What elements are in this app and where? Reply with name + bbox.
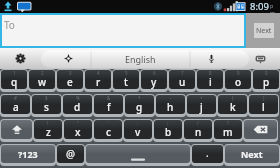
button[interactable]: 3 [57,70,83,89]
button[interactable]: % [63,95,92,114]
staticText: ( [232,95,234,101]
button[interactable]: + [187,95,216,114]
staticText: 2 [41,70,44,76]
button[interactable]: ? [214,120,242,139]
staticText: 8 [209,70,212,76]
staticText: b [165,125,172,139]
staticText: f [107,100,111,114]
staticText: pm [270,2,276,15]
button[interactable]: * [125,95,154,114]
staticText: + [200,95,203,101]
staticText: @ [66,147,75,161]
button[interactable]: / [184,120,212,139]
button[interactable]: ! [34,120,62,139]
button[interactable]: ?123 [1,145,55,163]
staticText: - [170,95,172,101]
staticText: ; [167,120,169,126]
button[interactable] [86,145,190,163]
staticText: o [235,75,242,89]
staticText: l [262,100,265,114]
button[interactable]: & [94,95,123,114]
staticText: ' [107,120,109,126]
staticText: 0 [265,70,268,76]
staticText: k [230,100,236,114]
staticText: To [4,18,15,32]
staticText: 3 [69,70,72,76]
staticText: 6 [153,70,156,76]
staticText: t [124,75,128,89]
staticText: q [11,75,18,89]
button[interactable]: Voice input [194,48,229,69]
staticText: n [195,125,202,139]
button[interactable]: Settings [9,48,31,69]
staticText: 1 [13,70,16,76]
staticText: ? [227,120,229,126]
button[interactable]: 2 [29,70,55,89]
button[interactable]: ) [249,95,278,114]
staticText: r [96,75,101,89]
staticText: # [14,95,17,101]
staticText: / [197,120,199,126]
button[interactable]: ; [154,120,182,139]
staticText: u [179,75,186,89]
staticText: Next [241,148,263,160]
staticText: d [74,100,81,114]
button[interactable]: 0 [253,70,279,89]
staticText: 7 [181,70,184,76]
staticText: z [46,125,51,139]
staticText: c [106,125,111,139]
staticText: j [200,100,203,114]
button[interactable]: English [95,48,186,69]
button[interactable]: . [192,145,223,163]
staticText: x [75,125,81,139]
staticText: p [263,75,270,89]
button[interactable]: To [2,15,244,46]
staticText: m [223,125,233,139]
button[interactable]: Hide keyboard [249,48,271,69]
button[interactable]: 9 [225,70,251,89]
button[interactable]: @ [57,145,84,163]
button[interactable]: Next [254,23,274,38]
button[interactable]: # [1,95,30,114]
staticText: 5 [125,70,128,76]
staticText: . [206,146,209,160]
button[interactable]: - [156,95,185,114]
staticText: % [76,95,80,101]
staticText: w [38,75,47,89]
button[interactable]: ' [94,120,122,139]
staticText: i [209,75,212,89]
button[interactable]: : [124,120,152,139]
button[interactable]: 8 [197,70,223,89]
staticText: g [136,100,143,114]
staticText: y [151,75,157,89]
staticText: : [137,120,139,126]
staticText: 4 [97,70,100,76]
button[interactable]: ( [218,95,247,114]
staticText: s [44,100,49,114]
button[interactable]: 5 [113,70,139,89]
button[interactable]: 1 [1,70,27,89]
staticText: * [138,95,141,101]
staticText: h [167,100,174,114]
button[interactable]: 6 [141,70,167,89]
button[interactable]: 4 [85,70,111,89]
staticText: English [125,53,156,65]
staticText: 9 [237,70,240,76]
button[interactable]: 7 [169,70,195,89]
button[interactable] [244,120,277,139]
button[interactable]: Suggestions [50,48,86,69]
staticText: Next [256,26,272,36]
staticText: ?123 [18,148,38,160]
staticText: $ [45,95,48,101]
staticText: v [135,125,141,139]
staticText: 8:09 [250,0,269,13]
staticText: e [67,75,73,89]
staticText: " [77,120,79,126]
button[interactable]: $ [32,95,61,114]
staticText: ) [263,95,265,101]
button[interactable]: " [64,120,92,139]
staticText: a [13,100,19,114]
button[interactable]: Next [225,145,279,163]
button[interactable] [1,120,32,139]
staticText: ! [47,120,49,126]
